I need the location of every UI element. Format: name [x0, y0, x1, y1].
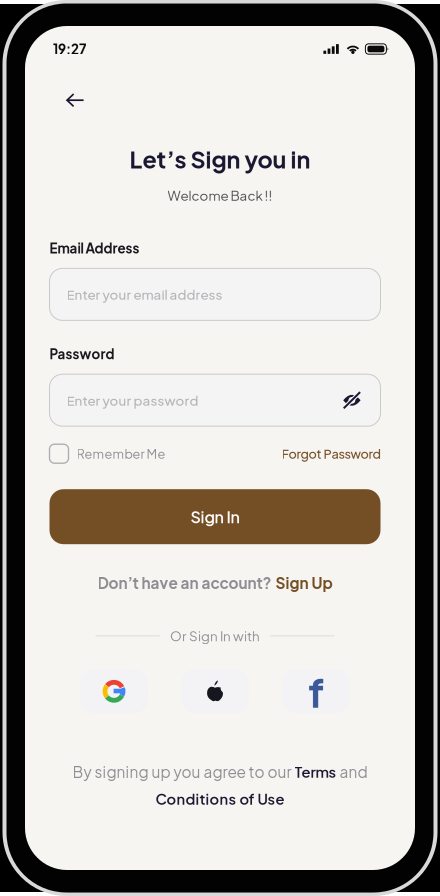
staticText: Let’s Sign you in: [129, 144, 310, 174]
button[interactable]: Back: [57, 84, 93, 116]
button[interactable]: Don’t have an account?: [49, 573, 380, 592]
staticText: and: [336, 762, 367, 781]
staticText: Terms: [294, 763, 336, 781]
staticText: Email Address: [49, 240, 139, 256]
button[interactable]: Remember Me: [49, 444, 165, 463]
staticText: Sign In: [190, 507, 239, 527]
staticText: Enter your email address: [66, 286, 222, 303]
staticText: Welcome Back !!: [167, 187, 272, 204]
button[interactable]: Sign in with Facebook: [282, 669, 350, 713]
staticText: Or Sign In with: [170, 627, 260, 644]
staticText: f: [308, 666, 324, 716]
staticText: Conditions of Use: [155, 789, 284, 808]
button[interactable]: Show password: [342, 391, 361, 409]
button[interactable]: Sign in with Apple: [181, 669, 249, 713]
staticText: By signing up you agree to our: [72, 762, 294, 781]
staticText: Password: [49, 345, 114, 362]
staticText: Forgot Password: [281, 446, 380, 462]
button[interactable]: Sign In: [49, 489, 380, 544]
staticText: Enter your password: [66, 392, 198, 409]
staticText: Sign Up: [275, 573, 332, 592]
staticText: Remember Me: [76, 446, 165, 462]
staticText: 19:27: [53, 41, 86, 57]
staticText: Don’t have an account?: [97, 573, 271, 592]
button[interactable]: Forgot Password: [281, 446, 380, 462]
button[interactable]: Sign in with Google: [80, 669, 148, 713]
